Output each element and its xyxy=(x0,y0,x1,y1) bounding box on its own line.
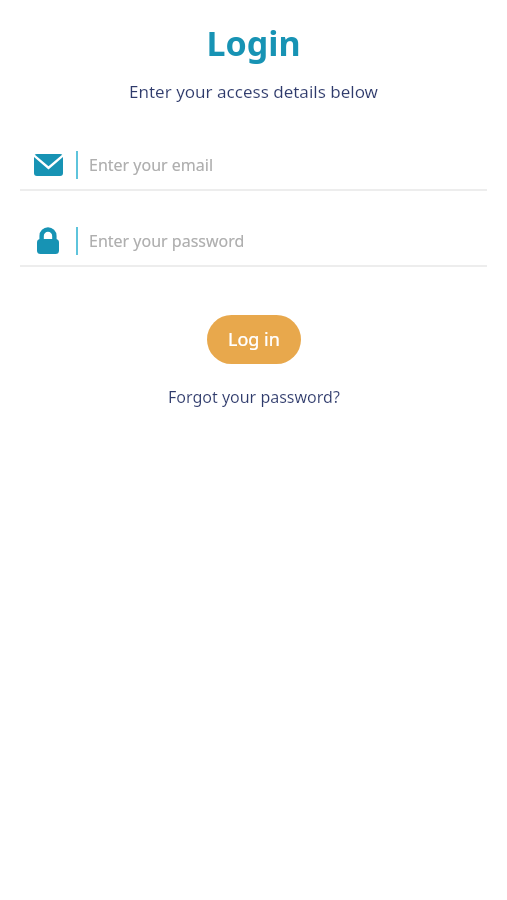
staticText: Enter your password xyxy=(89,230,245,252)
button[interactable]: Log in xyxy=(207,315,301,364)
other: Password xyxy=(33,226,63,256)
staticText: Enter your email xyxy=(89,154,214,176)
button[interactable]: Email xyxy=(20,141,487,191)
staticText: Log in xyxy=(228,327,280,352)
staticText: Forgot your password? xyxy=(168,386,340,408)
button[interactable]: Forgot your password? xyxy=(160,382,348,412)
staticText: Login xyxy=(0,20,507,66)
button[interactable]: Password xyxy=(20,217,487,267)
other: Email xyxy=(33,150,63,180)
staticText: Enter your access details below xyxy=(0,80,507,103)
